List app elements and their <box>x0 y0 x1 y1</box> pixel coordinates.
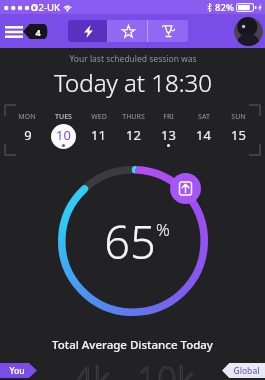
staticText: WED <box>91 112 107 122</box>
staticText: % <box>156 218 170 241</box>
button[interactable]: Profile <box>234 17 263 46</box>
staticText: Global <box>233 365 260 377</box>
staticText: MON <box>18 112 36 122</box>
staticText: 4k <box>72 354 110 380</box>
staticText: Today at 18:30 <box>54 66 212 99</box>
button[interactable]: You <box>0 363 37 378</box>
button[interactable]: SUN <box>221 104 256 156</box>
staticText: 10k <box>136 354 194 380</box>
button[interactable]: FRI <box>151 104 186 156</box>
staticText: 15 <box>231 126 246 144</box>
staticText: 9 <box>24 126 32 144</box>
button[interactable]: WED <box>81 104 116 156</box>
staticText: 10 <box>56 126 71 144</box>
button[interactable]: Global <box>222 363 265 378</box>
staticText: You <box>9 365 25 377</box>
button[interactable]: Activity <box>68 20 108 42</box>
staticText: 4 <box>35 26 41 38</box>
staticText: 14 <box>196 126 211 144</box>
button[interactable]: Favourites <box>108 20 148 42</box>
button[interactable]: Share <box>170 173 201 204</box>
button[interactable]: MON <box>9 104 45 156</box>
button[interactable]: Menu, 4 items <box>5 24 48 39</box>
staticText: 65 <box>104 211 156 272</box>
button[interactable]: THURS <box>116 104 151 156</box>
staticText: 4k <box>73 355 111 380</box>
staticText: THURS <box>122 112 145 122</box>
staticText: SUN <box>231 112 246 122</box>
staticText: SAT <box>198 112 210 122</box>
staticText: 10k <box>137 355 195 380</box>
staticText: O2-UK <box>31 1 60 14</box>
staticText: 13 <box>161 126 176 144</box>
button[interactable]: TUES <box>45 104 81 156</box>
staticText: Your last scheduled session was <box>69 53 197 65</box>
button[interactable]: Trophies <box>148 20 188 42</box>
staticText: TUES <box>55 112 72 122</box>
staticText: 11 <box>91 126 106 144</box>
staticText: Total Average Distance Today <box>52 337 213 353</box>
staticText: 4k <box>73 355 111 380</box>
staticText: 10k <box>137 355 195 380</box>
staticText: 12 <box>126 126 141 144</box>
staticText: 82% <box>215 1 234 14</box>
staticText: FRI <box>163 112 174 122</box>
button[interactable]: SAT <box>186 104 221 156</box>
